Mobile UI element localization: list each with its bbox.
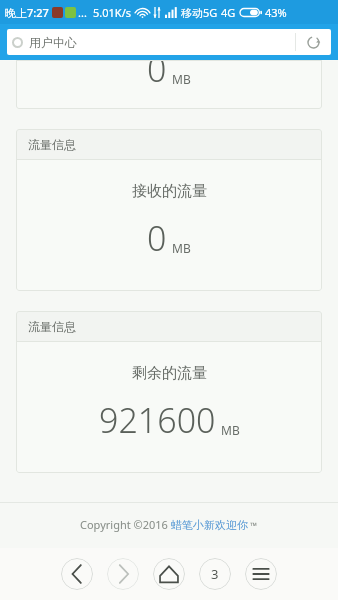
staticText: 0 <box>147 215 167 261</box>
staticText: MB <box>221 422 240 438</box>
staticText: MB <box>172 71 191 87</box>
staticText: Copyright ©2016 <box>80 517 171 532</box>
staticText: 流量信息 <box>28 137 76 152</box>
button[interactable]: Home <box>153 558 185 590</box>
button[interactable]: Address bar <box>7 29 331 55</box>
staticText: 5.01K/s <box>93 5 131 20</box>
staticText: 蜡笔小新欢迎你 <box>171 518 248 532</box>
staticText: 流量信息 <box>28 319 76 334</box>
staticText: 3 <box>211 565 219 583</box>
staticText: 0 <box>147 60 167 92</box>
button[interactable]: Menu <box>245 558 277 590</box>
button[interactable]: Forward <box>107 558 139 590</box>
staticText: ™ <box>248 519 258 531</box>
staticText: ... <box>78 5 87 20</box>
button[interactable]: 蜡笔小新欢迎你 <box>171 518 248 532</box>
staticText: 移动5G <box>181 5 218 20</box>
staticText: 43% <box>265 5 287 20</box>
staticText: 晚上7:27 <box>5 5 49 20</box>
staticText: 4G <box>221 5 236 20</box>
button[interactable]: 流量信息 <box>16 311 322 473</box>
button[interactable]: 流量信息 <box>16 129 322 291</box>
staticText: 接收的流量 <box>132 182 207 201</box>
staticText: 921600 <box>99 397 216 443</box>
staticText: 剩余的流量 <box>132 364 207 383</box>
staticText: MB <box>172 240 191 256</box>
button[interactable]: Back <box>61 558 93 590</box>
button[interactable]: Tabs, 3 open <box>199 558 231 590</box>
button[interactable]: Refresh <box>296 29 331 55</box>
staticText: 用户中心 <box>29 35 77 50</box>
